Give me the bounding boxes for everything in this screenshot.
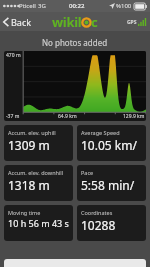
staticText: 00:22 [69,2,85,10]
button[interactable]: Back [0,14,36,30]
button[interactable]: Accum. elev. uphill [4,125,73,161]
staticText: 470 m [6,52,21,59]
staticText: Pace [81,169,94,176]
button[interactable] [4,259,146,267]
staticText: 10 h 56 m 43 s [8,217,69,229]
staticText: Average Speed [81,129,120,136]
button[interactable]: Pace [77,165,146,201]
button[interactable]: Coordinates [77,205,146,241]
button[interactable]: No photos added [0,33,150,51]
button[interactable]: Average Speed [77,125,146,161]
staticText: Coordinates [81,209,113,216]
staticText: 129.9 km [123,113,145,120]
staticText: 64.9 km [58,113,77,120]
staticText: No photos added [42,37,108,48]
staticText: 3G [38,2,46,10]
button[interactable]: GPS signal [124,15,150,29]
staticText: %100 [116,2,132,10]
staticText: Accum. elev. uphill [8,129,56,136]
staticText: 1309 m [8,137,50,153]
staticText: Back [11,16,32,28]
button[interactable]: 470 m [4,51,146,121]
staticText: Accum. elev. downhill [8,169,64,176]
staticText: Pticell [19,2,36,10]
staticText: 10288 [81,217,116,233]
staticText: -37 m [6,113,20,120]
staticText: Moving time [8,209,41,216]
staticText: c [91,13,98,31]
staticText: wikil [52,13,82,31]
staticText: GPS [127,19,137,26]
staticText: 5:58 min/km [81,177,144,193]
staticText: 1318 m [8,177,50,193]
button[interactable]: Accum. elev. downhill [4,165,73,201]
staticText: 10.05 km/h [81,137,144,153]
button[interactable]: Moving time [4,205,73,241]
